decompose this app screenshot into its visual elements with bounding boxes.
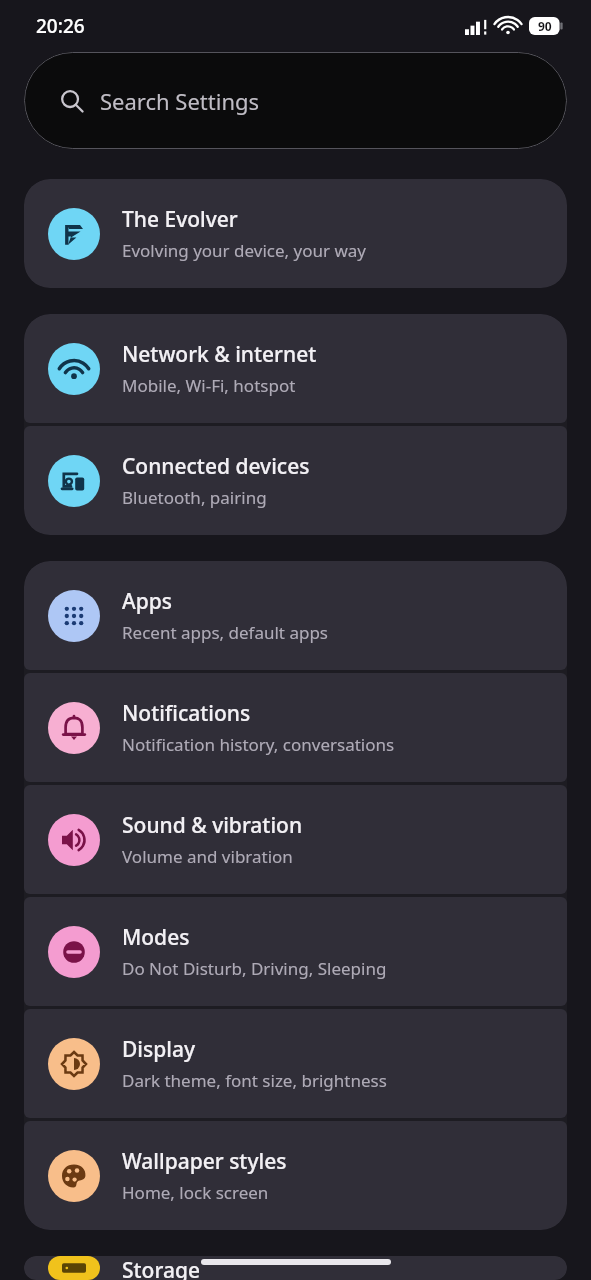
staticText: Search Settings [100, 86, 260, 116]
staticText: Mobile, Wi-Fi, hotspot [122, 374, 296, 397]
staticText: Notification history, conversations [122, 733, 395, 756]
staticText: Recent apps, default apps [122, 621, 329, 644]
staticText: Network & internet [122, 340, 317, 369]
button[interactable]: Notifications [24, 673, 567, 782]
staticText: Display [122, 1035, 196, 1064]
button[interactable]: Display [24, 1009, 567, 1118]
staticText: Home, lock screen [122, 1181, 269, 1204]
button[interactable]: Search Settings [24, 52, 567, 149]
button[interactable]: Network & internet [24, 314, 567, 423]
button[interactable]: Modes [24, 897, 567, 1006]
staticText: Notifications [122, 699, 251, 728]
staticText: Wallpaper styles [122, 1147, 287, 1176]
staticText: 90 [538, 18, 552, 34]
button[interactable]: Storage [24, 1256, 567, 1280]
staticText: Storage [122, 1256, 200, 1280]
staticText: Apps [122, 587, 173, 616]
staticText: Connected devices [122, 452, 310, 481]
button[interactable]: Sound & vibration [24, 785, 567, 894]
staticText: Modes [122, 923, 190, 952]
staticText: Evolving your device, your way [122, 239, 366, 262]
button[interactable]: Connected devices [24, 426, 567, 535]
button[interactable]: Wallpaper styles [24, 1121, 567, 1230]
staticText: Sound & vibration [122, 811, 303, 840]
staticText: Dark theme, font size, brightness [122, 1069, 387, 1092]
staticText: Bluetooth, pairing [122, 486, 267, 509]
button[interactable]: The Evolver [24, 179, 567, 288]
staticText: 20:26 [36, 13, 85, 39]
staticText: The Evolver [122, 205, 238, 234]
staticText: Volume and vibration [122, 845, 293, 868]
staticText: Do Not Disturb, Driving, Sleeping [122, 957, 387, 980]
button[interactable]: Apps [24, 561, 567, 670]
